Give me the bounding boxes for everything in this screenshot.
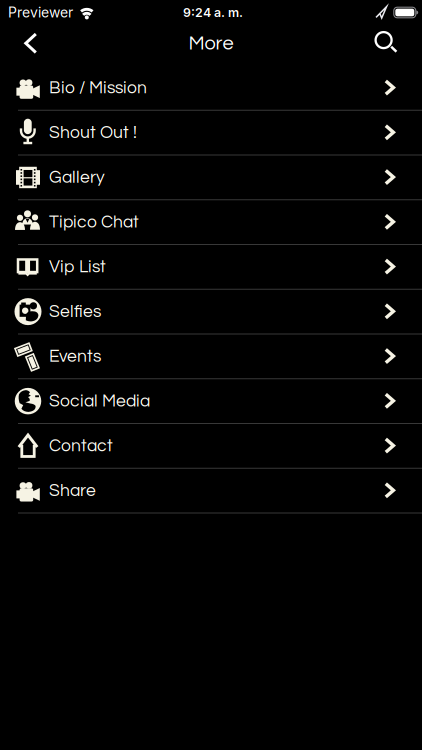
staticText: Events — [49, 347, 101, 365]
button[interactable]: Back — [0, 32, 48, 54]
staticText: Social Media — [49, 392, 150, 410]
button[interactable]: Contact — [0, 424, 422, 469]
staticText: Contact — [49, 437, 113, 455]
button[interactable]: Events — [0, 334, 422, 379]
staticText: 9:24 a. m. — [183, 5, 243, 20]
staticText: Gallery — [49, 168, 105, 186]
button[interactable]: Share — [0, 469, 422, 514]
button[interactable]: Gallery — [0, 155, 422, 200]
staticText: Vip List — [49, 258, 106, 276]
staticText: Tipico Chat — [49, 213, 139, 231]
staticText: Previewer — [8, 4, 73, 21]
button[interactable]: Shout Out ! — [0, 111, 422, 156]
button[interactable]: Tipico Chat — [0, 200, 422, 245]
button[interactable]: Vip List — [0, 245, 422, 290]
button[interactable]: Bio / Mission — [0, 66, 422, 111]
staticText: Shout Out ! — [49, 124, 137, 142]
staticText: Bio / Mission — [49, 79, 147, 97]
button[interactable]: Search — [376, 30, 422, 56]
staticText: Share — [49, 482, 96, 500]
staticText: Selfies — [49, 303, 101, 321]
button[interactable]: Social Media — [0, 379, 422, 424]
button[interactable]: Selfies — [0, 290, 422, 335]
staticText: More — [188, 33, 233, 54]
